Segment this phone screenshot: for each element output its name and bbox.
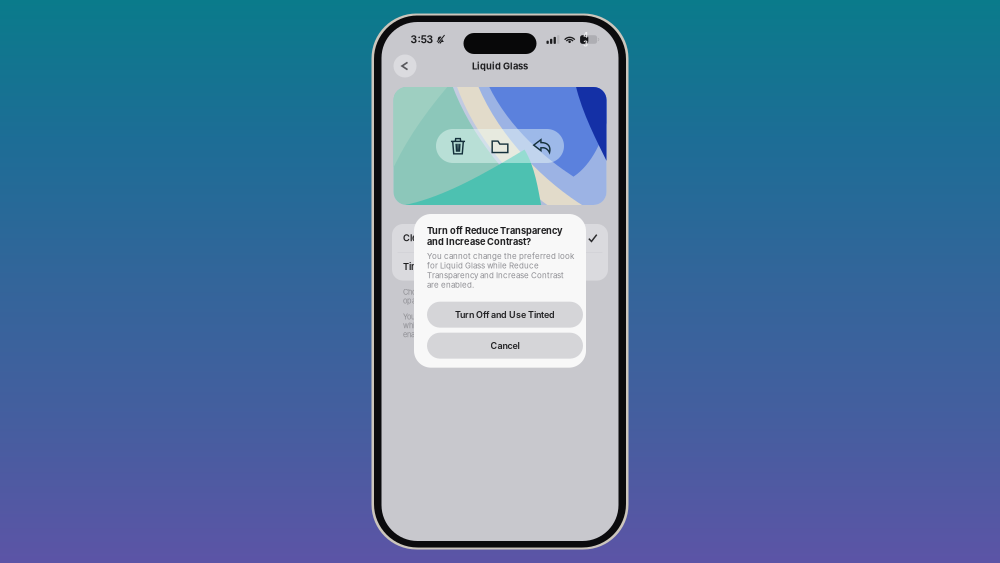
staticText: 3:53 (410, 33, 433, 46)
button[interactable]: Turn Off and Use Tinted (427, 302, 583, 328)
staticText: 43 (583, 31, 588, 48)
button[interactable]: Move to folder (479, 129, 521, 163)
staticText: Choose how Liquid Glass looks. Tinted in… (403, 288, 579, 305)
button[interactable]: Delete (437, 129, 479, 163)
staticText: Cancel (490, 340, 519, 351)
staticText: You cannot change the preferred look for… (403, 312, 585, 339)
staticText: Turn Off and Use Tinted (455, 309, 555, 320)
staticText: Clear (403, 232, 427, 243)
button[interactable]: Tinted (392, 253, 608, 281)
staticText: You cannot change the preferred look for… (427, 251, 574, 290)
button[interactable]: Reply (521, 129, 563, 163)
button[interactable]: Clear (392, 224, 608, 252)
staticText: Turn off Reduce Transparency and Increas… (427, 225, 563, 247)
button[interactable]: Back (393, 54, 416, 77)
staticText: Liquid Glass (472, 60, 528, 72)
button[interactable]: Cancel (427, 333, 583, 359)
staticText: Tinted (403, 261, 431, 272)
